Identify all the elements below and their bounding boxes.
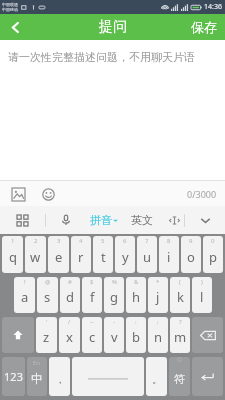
button[interactable]: ) [192,277,212,313]
staticText: l [200,288,204,306]
button[interactable]: - [104,317,124,353]
staticText: 123 [4,369,23,384]
button[interactable]: $ [82,277,102,313]
button[interactable]: 请一次性完整描述问题，不用聊天片语 [0,40,225,180]
button[interactable]: En [27,357,47,396]
staticText: e [55,248,63,266]
staticText: k [177,288,184,306]
button[interactable]: Shift [2,317,34,353]
staticText: 0 [211,237,215,245]
button[interactable]: 保存 [191,19,217,35]
staticText: 7 [145,237,149,245]
staticText: w [30,248,41,266]
staticText: ' [46,318,48,326]
button[interactable]: ' [36,317,57,353]
button[interactable]: ; [148,317,168,353]
button[interactable]: Back [0,14,30,40]
staticText: 请一次性完整描述问题，不用聊天片语 [8,50,195,64]
staticText: 中国移动 [2,7,18,12]
button[interactable]: ， [49,357,70,396]
staticText: 14:36 [204,2,222,12]
button[interactable]: 符 [169,357,190,396]
staticText: m [174,328,187,346]
staticText: u [143,248,152,266]
staticText: # [68,278,72,286]
other: Space [72,357,144,396]
staticText: o [187,248,195,266]
staticText: 拼音 [90,213,112,227]
button[interactable]: 英文 [128,213,156,227]
button[interactable]: 1 [2,236,23,273]
staticText: $ [90,278,94,286]
other: Backspace [192,317,223,353]
button[interactable]: 7 [137,236,157,273]
button[interactable]: ? [170,317,190,353]
staticText: 。 [152,373,162,386]
staticText: 6 [123,237,127,245]
button[interactable]: Space [72,357,144,396]
button[interactable]: 拼音 [86,213,122,227]
other: Enter [192,357,223,396]
staticText: s [44,288,51,306]
button[interactable]: Backspace [192,317,223,353]
button[interactable]: 8 [159,236,179,273]
button[interactable]: 。 [146,357,167,396]
button[interactable]: ! [14,277,35,313]
staticText: 9 [189,237,193,245]
staticText: b [132,328,140,346]
staticText: - [113,318,115,326]
staticText: ! [24,278,26,286]
button[interactable]: : [126,317,146,353]
staticText: c [89,328,96,346]
staticText: En [33,359,41,367]
staticText: y [122,248,129,266]
button[interactable]: 2 [25,236,46,273]
button[interactable]: 3 [48,236,69,273]
staticText: & [134,278,139,286]
staticText: 中 [31,371,43,386]
staticText: 中国联通 [2,2,18,7]
staticText: / [68,318,71,326]
button[interactable]: 0 [203,236,223,273]
button[interactable]: Hide keyboard [185,206,225,234]
button[interactable]: & [126,277,146,313]
staticText: 4 [79,237,83,245]
button[interactable]: # [60,277,80,313]
staticText: a [21,288,29,306]
button[interactable]: Enter [192,357,223,396]
button[interactable]: * [148,277,168,313]
button[interactable]: Add image [8,184,28,204]
staticText: 提问 [99,18,127,36]
staticText: ; [157,318,159,326]
button[interactable]: Voice input [46,206,86,234]
staticText: d [66,288,74,306]
other: Shift [2,317,34,353]
staticText: 符 [174,372,185,386]
staticText: ~ [90,318,94,326]
button[interactable]: ( [170,277,190,313]
button[interactable]: 123 [2,357,25,396]
staticText: 1 [11,237,15,245]
button[interactable]: ~ [82,317,102,353]
button[interactable]: 4 [71,236,91,273]
button[interactable]: Keyboard menu [0,206,45,234]
button[interactable]: 5 [93,236,113,273]
staticText: : [135,318,137,326]
button[interactable]: @ [37,277,58,313]
staticText: 2 [34,237,38,245]
button[interactable]: % [104,277,124,313]
button[interactable]: 9 [181,236,201,273]
staticText: 3 [57,237,61,245]
button[interactable]: / [59,317,80,353]
button[interactable]: Emoji [38,184,58,204]
staticText: p [209,248,217,266]
staticText: 0/3000 [187,188,217,200]
button[interactable]: Cursor move [164,210,184,230]
staticText: 5 [101,237,105,245]
staticText: n [154,328,163,346]
staticText: ， [55,373,65,386]
staticText: g [110,288,118,306]
button[interactable]: 6 [115,236,135,273]
staticText: @ [45,278,51,286]
staticText: i [167,248,171,266]
